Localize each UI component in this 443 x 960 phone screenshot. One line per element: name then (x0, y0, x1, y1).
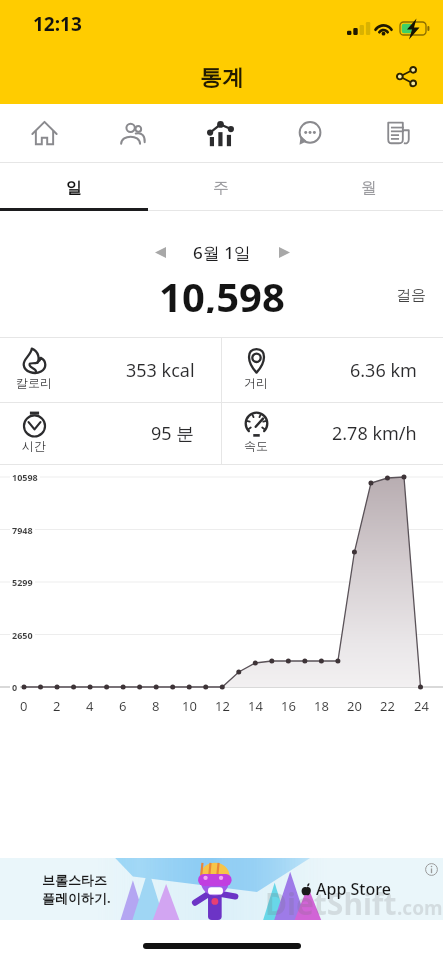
staticText: 0 (12, 681, 18, 693)
staticText: 8 (152, 697, 160, 715)
staticText: 시간 (22, 438, 46, 453)
staticText: 통계 (200, 64, 244, 92)
button[interactable]: 월 (295, 163, 443, 211)
button[interactable]: Previous day (141, 233, 179, 271)
staticText: 브롤스타즈 플레이하기. (42, 872, 111, 907)
button[interactable]: Statistics (176, 104, 265, 162)
staticText: 거리 (244, 375, 268, 390)
staticText: 18 (314, 697, 329, 715)
staticText: 10598 (12, 471, 38, 483)
staticText: 5299 (12, 576, 33, 588)
staticText: 2 (53, 697, 61, 715)
button[interactable]: Feed (354, 104, 443, 162)
staticText: 2.78 km/h (332, 421, 417, 446)
button[interactable]: 속도 (222, 403, 443, 464)
staticText: .com (397, 895, 443, 921)
staticText: 14 (248, 697, 263, 715)
button[interactable]: Friends (88, 104, 176, 162)
staticText: 걸음 (396, 286, 426, 305)
staticText: 속도 (244, 438, 268, 453)
staticText: 6.36 km (350, 358, 417, 383)
staticText: 6 (119, 697, 127, 715)
staticText: 2650 (12, 629, 33, 641)
staticText: 4 (86, 697, 94, 715)
button[interactable]: DietShift (0, 858, 443, 920)
button[interactable]: 거리 (222, 338, 443, 402)
staticText: 24 (414, 697, 429, 715)
button[interactable]: Messages (265, 104, 354, 162)
staticText: App Store (316, 878, 391, 900)
button[interactable]: Home (0, 104, 88, 162)
button[interactable]: 주 (147, 163, 295, 211)
staticText: 353 kcal (126, 358, 195, 383)
staticText: 0 (20, 697, 28, 715)
staticText: 주 (213, 178, 229, 198)
staticText: 6월 1일 (193, 241, 251, 264)
staticText: 16 (281, 697, 296, 715)
staticText: DietShift (265, 883, 397, 924)
staticText: 95 분 (151, 421, 195, 446)
staticText: 7948 (12, 524, 33, 536)
staticText: 12 (215, 697, 230, 715)
button[interactable]: Ad info (424, 862, 438, 876)
button[interactable]: 일 (0, 163, 147, 211)
button[interactable]: 시간 (0, 403, 221, 464)
button[interactable]: Share (383, 53, 429, 99)
staticText: 12:13 (33, 11, 82, 37)
button[interactable]: 칼로리 (0, 338, 221, 402)
staticText: 20 (347, 697, 362, 715)
button[interactable]: Next day (265, 233, 303, 271)
staticText: 칼로리 (16, 375, 52, 390)
staticText: 일 (66, 178, 82, 198)
staticText: 10,598 (159, 269, 285, 313)
staticText: 10 (182, 697, 197, 715)
staticText: 월 (361, 178, 377, 198)
staticText: 22 (380, 697, 395, 715)
